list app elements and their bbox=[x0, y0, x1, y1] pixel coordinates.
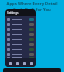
button[interactable]: Nav item bbox=[22, 61, 26, 65]
staticText: Settings bbox=[7, 11, 19, 15]
button[interactable] bbox=[5, 17, 36, 22]
button[interactable] bbox=[5, 52, 36, 57]
button[interactable] bbox=[5, 27, 36, 32]
staticText: Feels Built for You bbox=[13, 7, 51, 13]
button[interactable] bbox=[5, 37, 36, 42]
button[interactable] bbox=[5, 47, 36, 52]
button[interactable] bbox=[5, 42, 36, 47]
button[interactable] bbox=[5, 57, 36, 58]
button[interactable]: Nav item bbox=[8, 61, 12, 65]
button[interactable]: Nav item bbox=[29, 61, 33, 65]
button[interactable] bbox=[5, 22, 36, 27]
staticText: Apps Where Every Detail bbox=[6, 1, 58, 7]
button[interactable]: Nav item bbox=[15, 61, 19, 65]
button[interactable] bbox=[5, 32, 36, 37]
